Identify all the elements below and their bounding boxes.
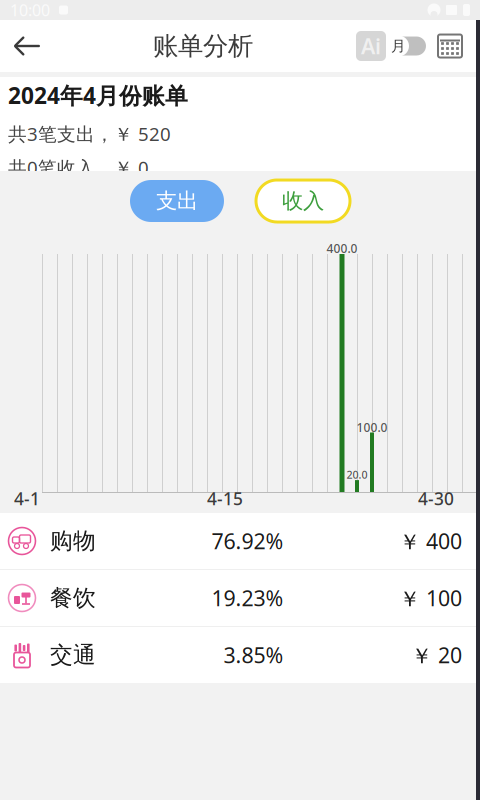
button[interactable]: 选择日期 [430,24,470,68]
staticText: 账单分析 [153,30,253,61]
staticText: 收入 [282,188,324,214]
staticText: Ai [361,32,381,60]
staticText: 76.92% [211,527,283,555]
staticText: 10:00 [10,0,50,21]
button[interactable]: 返回 [4,21,50,71]
staticText: 4-1 [14,487,40,510]
button[interactable]: 购物 [0,513,480,570]
button[interactable]: 支出 [130,180,224,222]
button[interactable]: AI 助手 [356,31,386,61]
staticText: 20.0 [346,468,367,482]
staticText: ￥ 400 [399,527,462,555]
staticText: 共3笔支出，￥ 520 [8,121,171,146]
staticText: 400.0 [326,240,357,256]
staticText: 共0笔收入，￥ 0 [8,155,149,180]
button[interactable]: 按月切换 [386,29,430,63]
staticText: 3.85% [223,641,283,669]
staticText: ￥ 20 [411,641,462,669]
button[interactable]: 餐饮 [0,570,480,627]
staticText: 月 [391,37,406,55]
staticText: 19.23% [211,584,283,612]
staticText: ￥ 100 [399,584,462,612]
staticText: 4-30 [418,487,454,510]
staticText: 购物 [50,527,96,555]
button[interactable]: 交通 [0,627,480,683]
staticText: 支出 [156,188,198,214]
staticText: 餐饮 [50,584,96,612]
staticText: 交通 [50,641,96,669]
staticText: 4-15 [207,487,243,510]
staticText: 2024年4月份账单 [8,80,188,110]
button[interactable]: 收入 [256,180,350,222]
staticText: 100.0 [356,419,387,435]
